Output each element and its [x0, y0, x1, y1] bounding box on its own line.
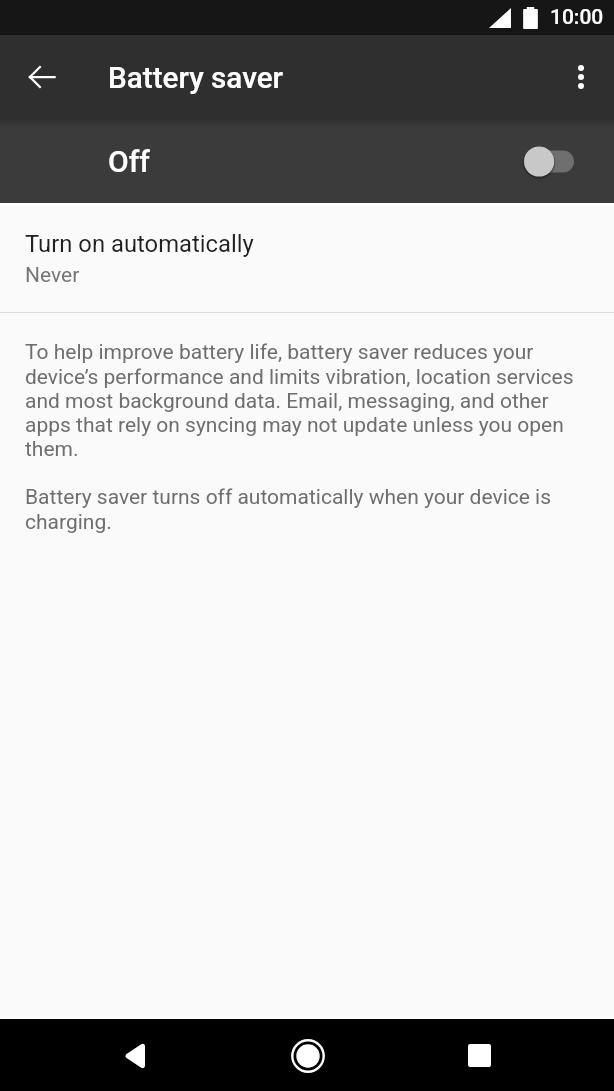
staticText: Battery saver	[108, 60, 284, 95]
staticText: Never	[25, 263, 80, 288]
button[interactable]: Back	[110, 1031, 159, 1080]
staticText: To help improve battery life, battery sa…	[25, 340, 575, 461]
button[interactable]: Home	[283, 1031, 332, 1080]
button[interactable]: Recent apps	[455, 1031, 504, 1080]
staticText: Battery saver turns off automatically wh…	[25, 485, 575, 534]
staticText: 10:00	[550, 5, 604, 30]
button[interactable]: More options	[557, 53, 605, 101]
staticText: Off	[108, 144, 150, 179]
button[interactable]: Back	[17, 52, 67, 102]
button[interactable]: Turn on automatically	[0, 203, 614, 312]
button[interactable]: Off	[0, 119, 614, 203]
staticText: Turn on automatically	[25, 230, 254, 258]
